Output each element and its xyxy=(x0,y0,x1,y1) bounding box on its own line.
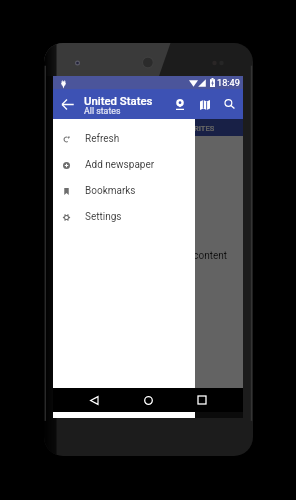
staticText: FAVORITES xyxy=(176,124,215,133)
staticText: Add newspaper xyxy=(85,159,155,171)
button[interactable]: Bookmarks xyxy=(53,178,195,204)
staticText: Refresh xyxy=(85,133,120,145)
staticText: 18:49 xyxy=(217,77,240,88)
staticText: United States xyxy=(84,94,153,107)
button[interactable]: Add newspaper xyxy=(53,152,195,178)
button[interactable]: Settings xyxy=(53,204,195,230)
staticText: Bookmarks xyxy=(85,185,136,197)
button[interactable]: Refresh xyxy=(53,126,195,152)
button[interactable]: LATEST xyxy=(53,119,148,138)
staticText: Settings xyxy=(85,211,122,223)
button[interactable]: Back xyxy=(81,388,107,412)
button[interactable]: Navigate up xyxy=(55,92,79,116)
button[interactable]: FAVORITES xyxy=(148,119,243,138)
button[interactable]: Home xyxy=(135,388,161,412)
button[interactable]: My location xyxy=(167,92,192,117)
button[interactable]: Search xyxy=(217,92,242,117)
button[interactable]: Recent apps xyxy=(189,388,215,412)
staticText: All states xyxy=(84,106,121,116)
staticText: No content xyxy=(178,250,228,262)
button[interactable]: Map xyxy=(192,92,217,117)
